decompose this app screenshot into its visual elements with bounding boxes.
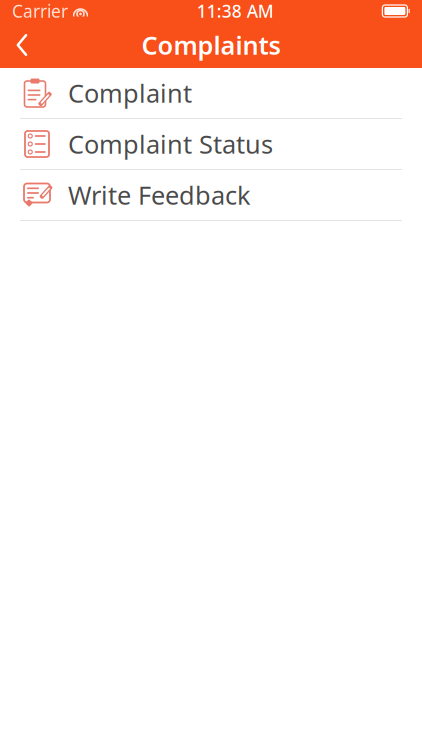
staticText: Complaint Status bbox=[68, 127, 273, 161]
button[interactable]: Back bbox=[0, 23, 44, 67]
button[interactable]: Complaint bbox=[0, 68, 422, 119]
staticText: 11:38 AM bbox=[197, 0, 274, 22]
staticText: Write Feedback bbox=[68, 178, 251, 212]
staticText: Complaint bbox=[68, 76, 192, 110]
staticText: Carrier bbox=[12, 0, 68, 22]
button[interactable]: Write Feedback bbox=[0, 170, 422, 221]
button[interactable]: Complaint Status bbox=[0, 119, 422, 170]
staticText: Complaints bbox=[141, 28, 280, 62]
